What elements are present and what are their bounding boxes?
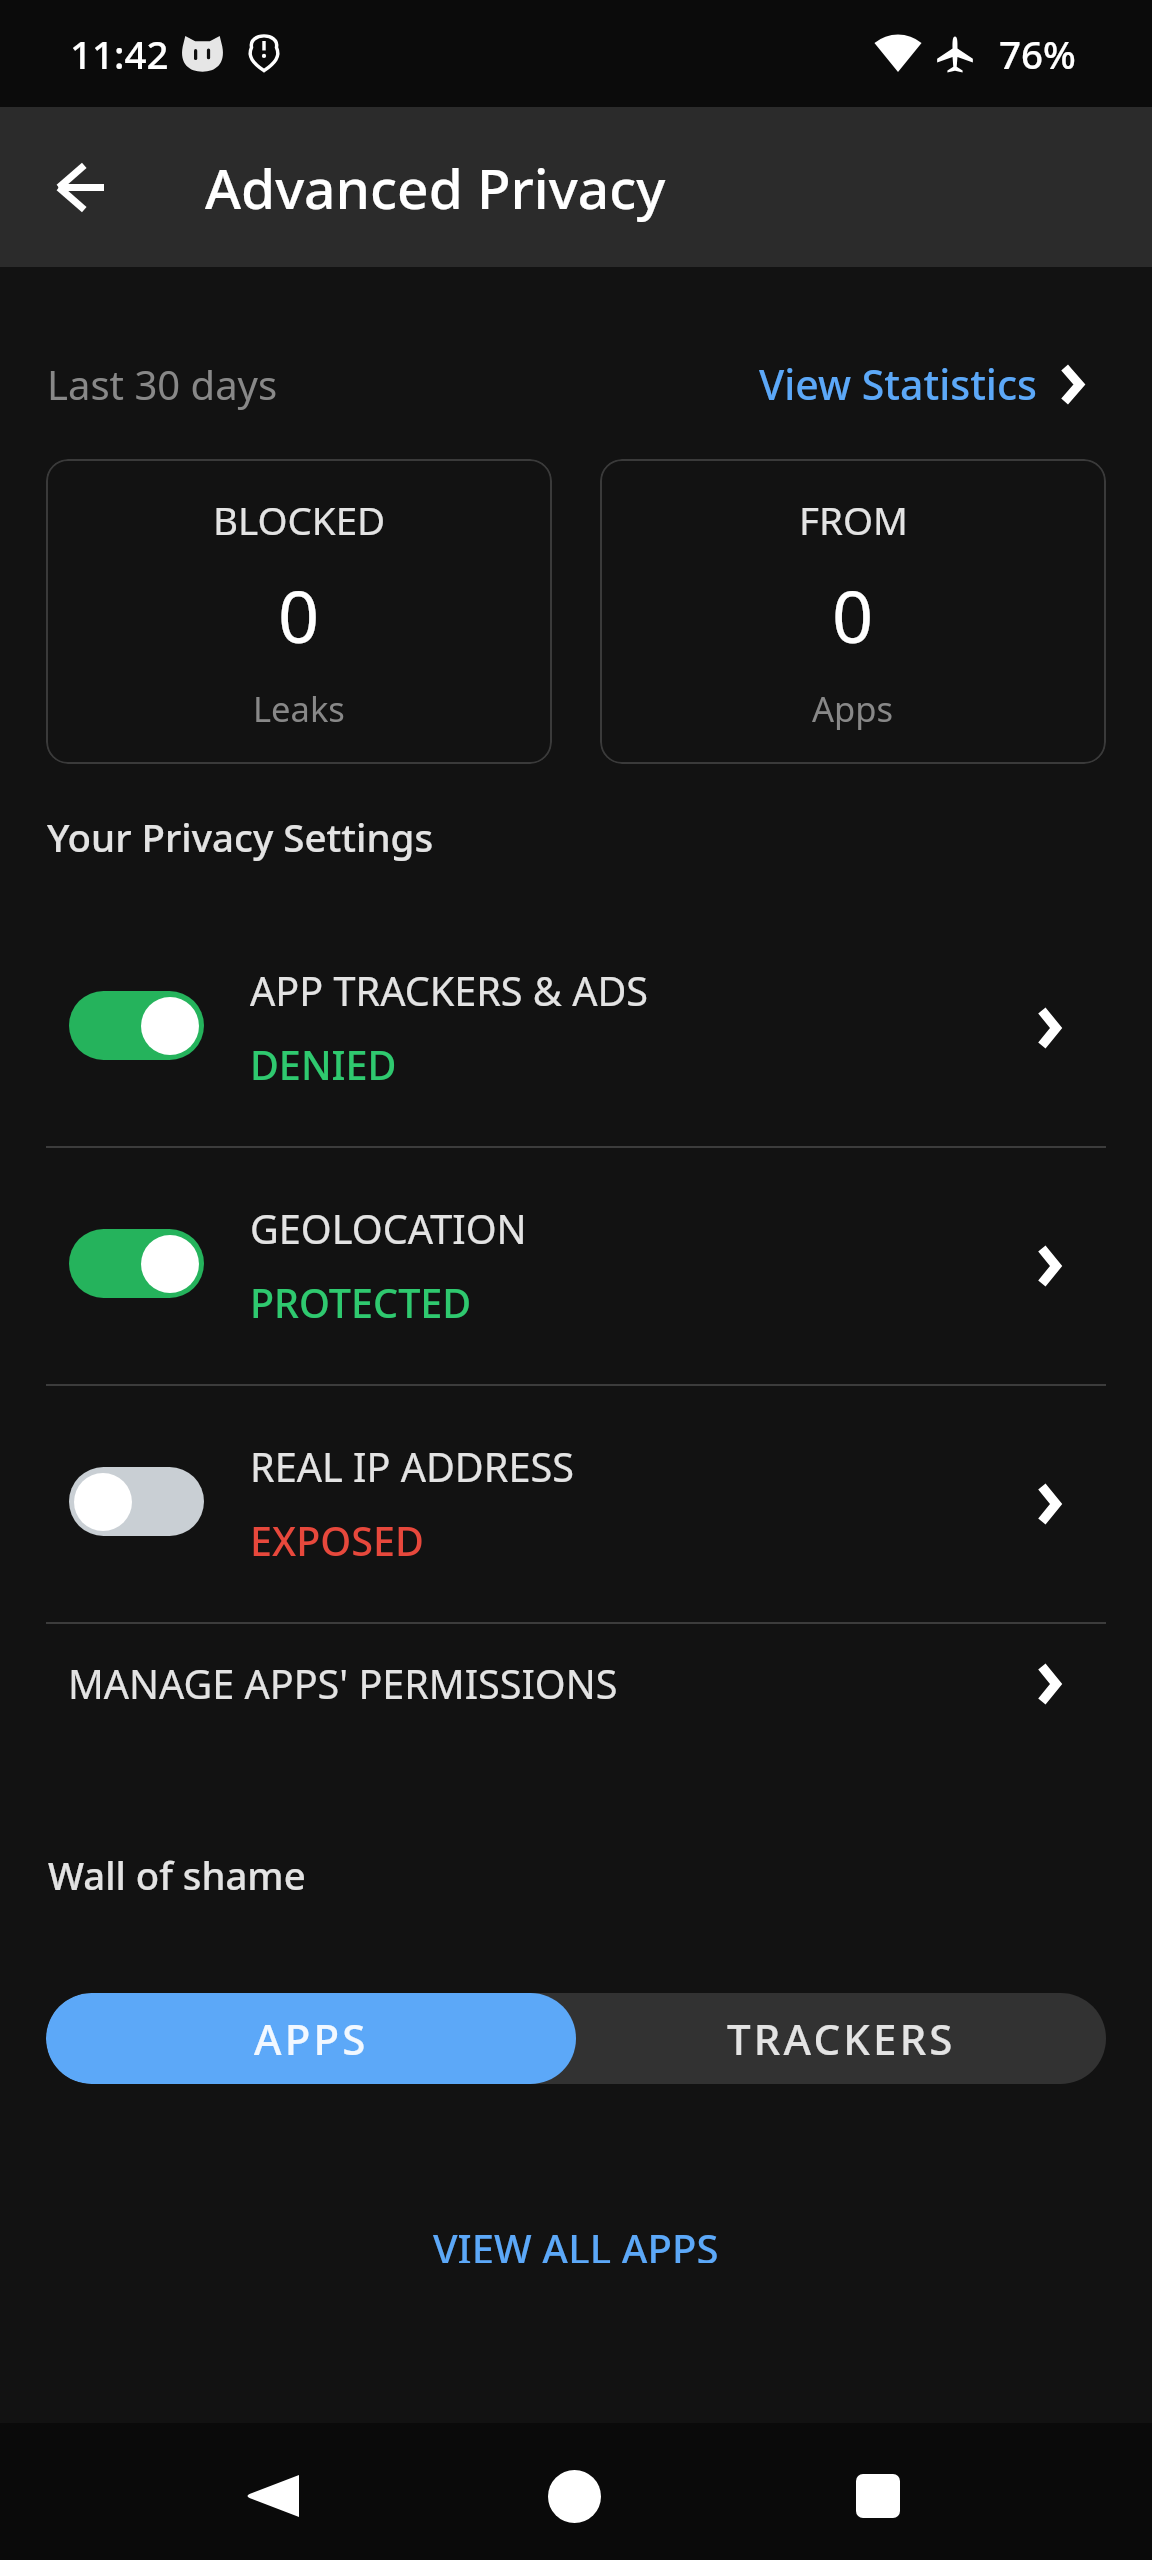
staticText: Last 30 days bbox=[47, 357, 278, 411]
staticText: EXPOSED bbox=[250, 1514, 424, 1568]
button[interactable]: Back bbox=[32, 139, 128, 235]
staticText: 11:42 bbox=[70, 28, 169, 80]
button[interactable]: TRACKERS bbox=[576, 1993, 1106, 2084]
staticText: 76% bbox=[999, 28, 1076, 80]
staticText: 0 bbox=[278, 566, 320, 664]
button[interactable]: Recent apps bbox=[823, 2441, 933, 2551]
staticText: Wall of shame bbox=[48, 1849, 306, 1899]
button[interactable]: View Statistics bbox=[759, 356, 1085, 412]
staticText: REAL IP ADDRESS bbox=[250, 1440, 574, 1494]
button[interactable]: VIEW ALL APPS bbox=[403, 2207, 749, 2277]
staticText: Apps bbox=[812, 685, 894, 732]
button[interactable]: Toggle off bbox=[0, 1386, 1152, 1622]
staticText: APPS bbox=[254, 2010, 369, 2067]
staticText: 0 bbox=[832, 566, 874, 664]
button[interactable]: APPS bbox=[46, 1993, 576, 2084]
staticText: BLOCKED bbox=[213, 494, 386, 546]
button[interactable]: Toggle on bbox=[0, 1148, 1152, 1384]
other: Toggle off bbox=[69, 1467, 204, 1536]
button[interactable]: Back bbox=[216, 2441, 326, 2551]
staticText: FROM bbox=[799, 494, 908, 546]
staticText: Advanced Privacy bbox=[205, 150, 666, 225]
staticText: Your Privacy Settings bbox=[47, 811, 434, 861]
button[interactable]: MANAGE APPS' PERMISSIONS bbox=[0, 1624, 1152, 1744]
button[interactable]: FROM bbox=[600, 459, 1106, 764]
staticText: VIEW ALL APPS bbox=[433, 2221, 719, 2263]
staticText: TRACKERS bbox=[727, 2010, 956, 2067]
staticText: PROTECTED bbox=[250, 1276, 472, 1330]
staticText: Leaks bbox=[253, 685, 345, 732]
staticText: MANAGE APPS' PERMISSIONS bbox=[68, 1657, 618, 1711]
button[interactable]: Home bbox=[519, 2441, 629, 2551]
other: Toggle on bbox=[69, 1229, 204, 1298]
other: Toggle on bbox=[69, 991, 204, 1060]
staticText: DENIED bbox=[250, 1038, 397, 1092]
staticText: GEOLOCATION bbox=[250, 1202, 527, 1256]
button[interactable]: Toggle on bbox=[0, 910, 1152, 1146]
staticText: View Statistics bbox=[759, 356, 1037, 412]
button[interactable]: BLOCKED bbox=[46, 459, 552, 764]
staticText: APP TRACKERS & ADS bbox=[250, 964, 649, 1018]
